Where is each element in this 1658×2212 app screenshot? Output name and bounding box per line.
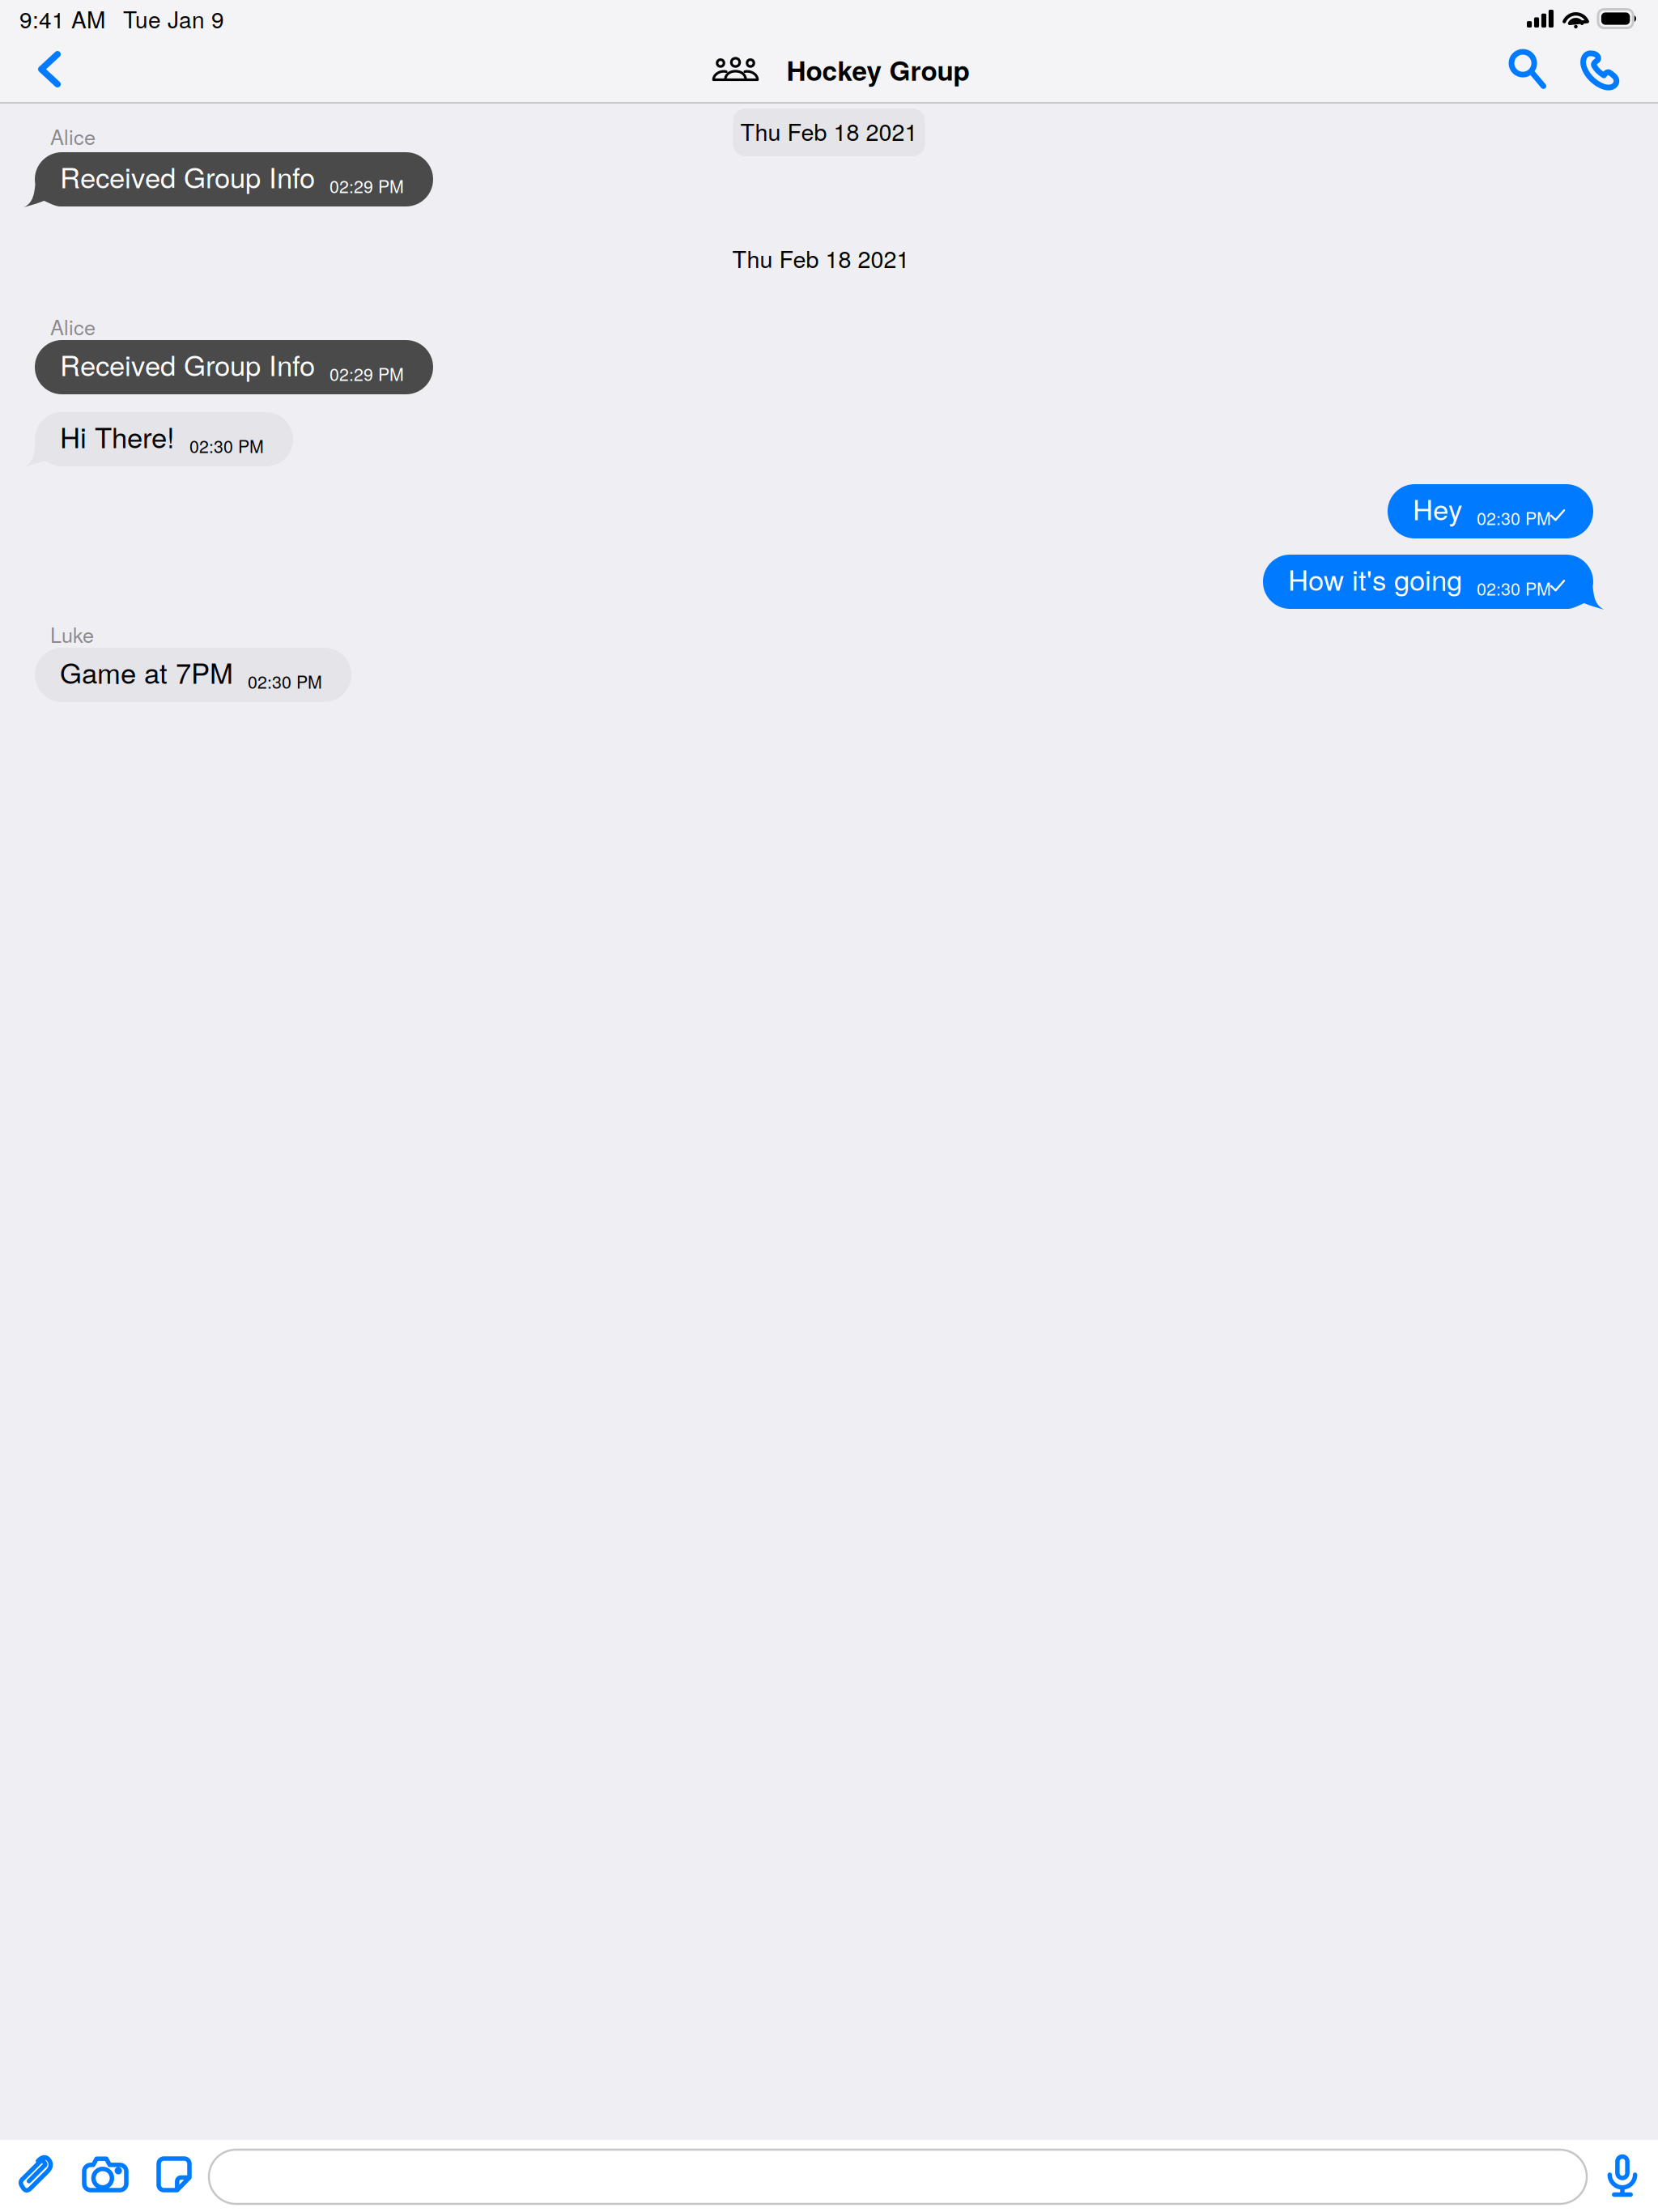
staticText: Hockey Group bbox=[786, 50, 969, 89]
staticText: Luke bbox=[50, 619, 94, 649]
staticText: Hi There! bbox=[60, 416, 175, 456]
staticText: Thu Feb 18 2021 bbox=[732, 241, 910, 275]
staticText: 02:30 PM bbox=[1477, 576, 1551, 600]
staticText: Game at 7PM bbox=[60, 652, 233, 692]
button[interactable]: Attach file bbox=[0, 2140, 69, 2212]
staticText: 02:30 PM bbox=[1477, 505, 1551, 530]
button[interactable]: Back bbox=[0, 37, 84, 102]
button[interactable]: Stickers bbox=[142, 2140, 209, 2212]
staticText: Alice bbox=[50, 121, 96, 151]
staticText: Received Group Info bbox=[60, 156, 315, 196]
staticText: Hey bbox=[1413, 488, 1462, 528]
staticText: Tue Jan 9 bbox=[123, 2, 224, 35]
staticText: Alice bbox=[50, 312, 96, 341]
staticText: Received Group Info bbox=[60, 344, 315, 384]
staticText: 02:30 PM bbox=[189, 433, 264, 458]
button[interactable]: Call bbox=[1563, 37, 1637, 102]
button[interactable]: Dictate bbox=[1587, 2140, 1658, 2212]
staticText: 02:29 PM bbox=[329, 361, 404, 386]
button[interactable]: Search bbox=[1494, 37, 1563, 102]
staticText: 9:41 AM bbox=[19, 2, 105, 35]
button[interactable]: Message input bbox=[209, 2140, 1587, 2212]
staticText: Thu Feb 18 2021 bbox=[740, 114, 918, 147]
button[interactable]: Camera bbox=[69, 2140, 142, 2212]
staticText: How it's going bbox=[1288, 558, 1462, 599]
staticText: 02:29 PM bbox=[329, 173, 404, 198]
staticText: 02:30 PM bbox=[248, 669, 322, 693]
